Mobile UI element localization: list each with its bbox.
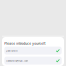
staticText: Please introduce yourself. [4, 41, 46, 46]
staticText: John Smith [6, 49, 17, 52]
staticText: johnsmith@mail.com [6, 59, 28, 62]
button[interactable]: John Smith [4, 47, 62, 55]
button[interactable]: johnsmith@mail.com [4, 57, 62, 65]
